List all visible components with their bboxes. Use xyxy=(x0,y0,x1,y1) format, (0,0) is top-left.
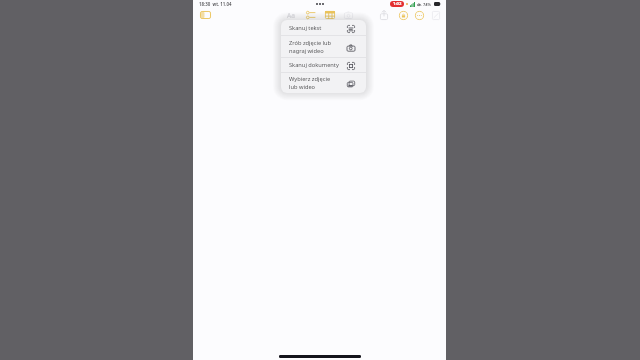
staticText: 1:02 xyxy=(393,1,402,7)
button[interactable]: Checklist xyxy=(303,8,317,22)
staticText: Aa xyxy=(287,11,295,20)
staticText: Wybierz zdjęcie xyxy=(289,75,331,83)
staticText: Zrób zdjęcie lub xyxy=(289,39,332,47)
button[interactable]: Lock note xyxy=(396,8,410,22)
staticText: Skanuj dokumenty xyxy=(289,61,339,69)
button[interactable]: Zrób zdjęcie lub xyxy=(281,36,366,57)
staticText: nagraj wideo xyxy=(289,47,324,55)
button[interactable]: New note xyxy=(429,8,443,22)
button[interactable]: Skanuj dokumenty xyxy=(281,58,366,72)
staticText: 18:30 wt. 11.04 xyxy=(199,1,232,7)
button[interactable]: Attach media xyxy=(341,8,355,22)
staticText: Skanuj tekst xyxy=(289,24,322,32)
button[interactable]: Table xyxy=(323,8,337,22)
staticText: 74% xyxy=(423,2,432,7)
button[interactable]: Text format xyxy=(284,8,298,22)
button[interactable]: Wybierz zdjęcie xyxy=(281,73,366,93)
button[interactable]: Skanuj tekst xyxy=(281,20,366,35)
button[interactable]: Share xyxy=(377,8,391,22)
button[interactable]: Show sidebar xyxy=(198,8,212,22)
staticText: lub wideo xyxy=(289,83,316,91)
button[interactable]: More xyxy=(412,8,426,22)
